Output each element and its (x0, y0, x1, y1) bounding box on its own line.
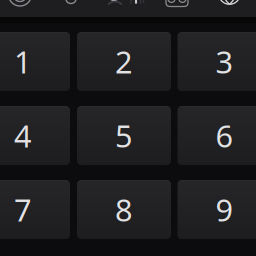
staticText: 1 (14, 41, 32, 82)
staticText: 2 (115, 41, 133, 82)
button[interactable]: 6 (177, 106, 256, 165)
staticText: 7 (14, 189, 32, 230)
button[interactable]: 4 (0, 106, 70, 165)
staticText: 4 (14, 115, 32, 156)
button[interactable]: 5 (77, 106, 171, 165)
button[interactable]: 3 (177, 32, 256, 91)
staticText: 3 (215, 41, 233, 82)
button[interactable]: 2 (77, 32, 171, 91)
button[interactable]: 1 (0, 32, 70, 91)
button[interactable]: 8 (77, 180, 171, 239)
staticText: 6 (215, 115, 233, 156)
staticText: 8 (115, 189, 133, 230)
button[interactable]: 7 (0, 180, 70, 239)
staticText: 5 (115, 115, 133, 156)
button[interactable]: 9 (177, 180, 256, 239)
staticText: 9 (215, 189, 233, 230)
